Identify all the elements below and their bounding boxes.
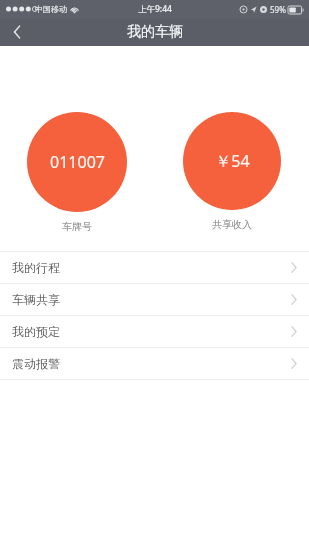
button[interactable]: 我的预定 bbox=[0, 316, 309, 347]
button[interactable]: ￥54 bbox=[183, 112, 281, 210]
staticText: 我的行程 bbox=[12, 260, 60, 275]
staticText: 车牌号 bbox=[62, 220, 92, 233]
button[interactable]: 011007 bbox=[27, 112, 127, 212]
staticText: 车辆共享 bbox=[12, 292, 60, 307]
staticText: 共享收入 bbox=[212, 218, 252, 231]
staticText: 上午9:44 bbox=[138, 3, 172, 15]
staticText: 011007 bbox=[50, 151, 105, 173]
staticText: 我的车辆 bbox=[127, 23, 183, 41]
staticText: 我的预定 bbox=[12, 324, 60, 339]
button[interactable]: 震动报警 bbox=[0, 348, 309, 379]
staticText: 59% bbox=[270, 4, 286, 15]
staticText: 震动报警 bbox=[12, 356, 60, 371]
button[interactable]: 车辆共享 bbox=[0, 284, 309, 315]
button[interactable]: Back bbox=[0, 18, 34, 46]
staticText: ￥54 bbox=[215, 150, 250, 172]
staticText: 中国移动 bbox=[35, 4, 67, 14]
button[interactable]: 我的行程 bbox=[0, 252, 309, 283]
